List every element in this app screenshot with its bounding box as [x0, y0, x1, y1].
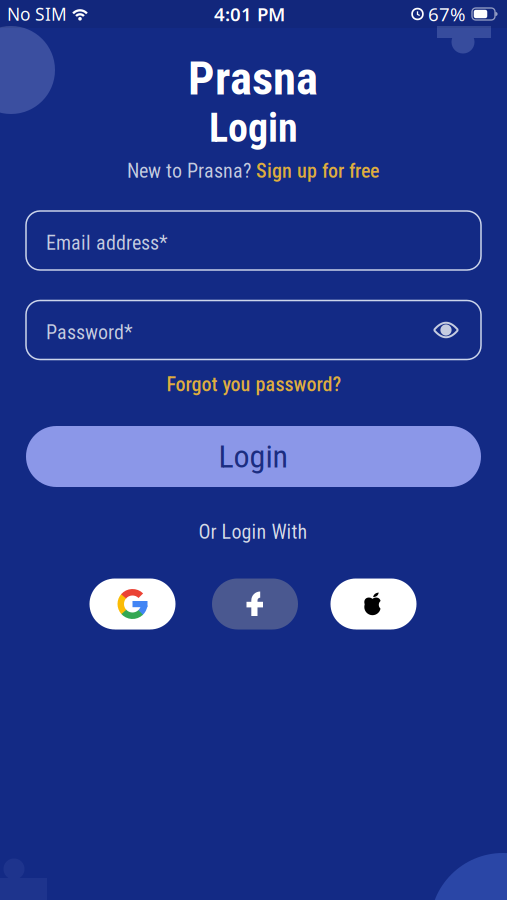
staticText: Sign up for free [256, 159, 379, 183]
button[interactable]: Forgot you password? [166, 373, 341, 396]
staticText: Login [218, 438, 288, 475]
staticText: 4:01 PM [214, 2, 285, 26]
staticText: Email address* [46, 231, 168, 255]
staticText: 67% [428, 2, 466, 26]
staticText: Login [209, 105, 298, 151]
button[interactable]: Sign up for free [256, 159, 379, 183]
staticText: Prasna [188, 51, 318, 106]
staticText: No SIM [7, 2, 67, 25]
button[interactable]: Login [26, 426, 481, 487]
staticText: New to Prasna? [127, 159, 256, 183]
button[interactable]: Login with Facebook [212, 578, 298, 629]
staticText: Password* [46, 321, 133, 344]
staticText: Forgot you password? [166, 373, 341, 396]
button[interactable]: Show password [433, 320, 459, 340]
button[interactable]: Login with Apple [330, 578, 416, 629]
button[interactable]: Login with Google [89, 578, 175, 629]
staticText: Or Login With [198, 520, 307, 544]
